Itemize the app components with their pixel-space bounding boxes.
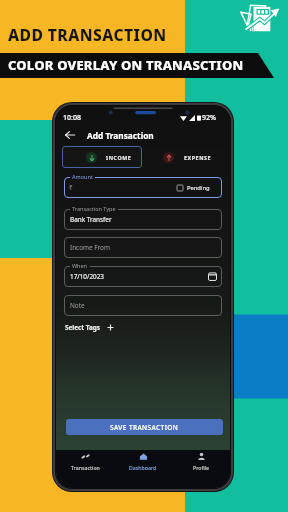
button[interactable]: INCOME xyxy=(62,146,142,168)
staticText: Note xyxy=(70,301,85,310)
button[interactable]: Pending xyxy=(177,182,210,194)
button[interactable] xyxy=(64,209,222,230)
staticText: SAVE TRANSACTION xyxy=(110,423,179,432)
staticText: Income From xyxy=(70,243,110,252)
button[interactable] xyxy=(64,237,222,258)
button[interactable]: EXPENSE xyxy=(148,146,228,168)
button[interactable] xyxy=(64,177,222,198)
staticText: When xyxy=(72,262,88,269)
staticText: 17/10/2023 xyxy=(70,272,104,281)
staticText: Profile xyxy=(193,464,210,471)
button[interactable]: Dashboard xyxy=(114,450,172,473)
staticText: EXPENSE xyxy=(184,154,212,161)
button[interactable]: Pick date xyxy=(208,272,217,281)
staticText: INCOME xyxy=(106,154,132,161)
button[interactable] xyxy=(64,295,222,316)
staticText: Add Transaction xyxy=(87,130,154,141)
staticText: Amount xyxy=(72,173,93,180)
staticText: COLOR OVERLAY ON TRANASCTION xyxy=(8,56,244,74)
button[interactable] xyxy=(64,266,222,287)
staticText: Bank Transfer xyxy=(70,215,112,224)
staticText: 10:08 xyxy=(63,113,81,123)
staticText: Dashboard xyxy=(129,464,157,471)
button[interactable]: Transaction xyxy=(56,450,114,473)
staticText: Select Tags xyxy=(65,323,101,332)
button[interactable]: Back xyxy=(62,127,78,143)
staticText: ₹ xyxy=(69,183,73,192)
button[interactable]: Profile xyxy=(172,450,230,473)
staticText: Transaction Type xyxy=(72,205,116,212)
staticText: Transaction xyxy=(71,464,100,471)
staticText: 92% xyxy=(202,113,216,123)
staticText: ADD TRANSACTION xyxy=(8,24,167,45)
button[interactable]: Select Tags xyxy=(65,322,114,333)
button[interactable]: SAVE TRANSACTION xyxy=(66,419,223,435)
staticText: Pending xyxy=(187,184,210,192)
